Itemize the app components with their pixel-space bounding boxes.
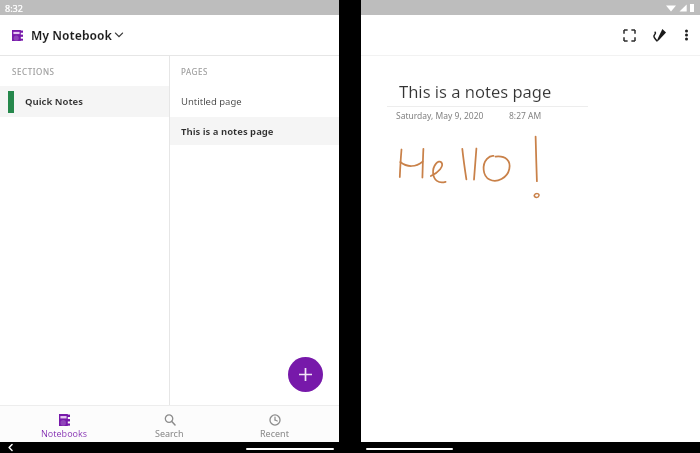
staticText: 8:27 AM xyxy=(509,110,542,122)
staticText: Saturday, May 9, 2020 xyxy=(396,110,484,122)
button[interactable]: New page xyxy=(288,357,323,392)
button[interactable]: My Notebook xyxy=(0,15,339,55)
button[interactable]: Untitled page xyxy=(170,86,339,117)
staticText: 8:32 xyxy=(5,2,23,14)
staticText: SECTIONS xyxy=(12,66,55,77)
button[interactable]: This is a notes page xyxy=(170,117,339,145)
staticText: Recent xyxy=(260,427,289,439)
staticText: Notebooks xyxy=(41,427,88,439)
staticText: My Notebook xyxy=(31,27,112,43)
button[interactable]: Recent xyxy=(222,414,327,442)
staticText: Quick Notes xyxy=(25,95,84,108)
button[interactable]: Notebooks xyxy=(12,414,117,442)
button[interactable]: Back xyxy=(6,443,15,452)
staticText: This is a notes page xyxy=(181,125,274,138)
button[interactable]: Quick Notes xyxy=(0,86,169,117)
button[interactable]: More options xyxy=(674,23,698,47)
staticText: Untitled page xyxy=(181,95,242,108)
button[interactable]: Home xyxy=(246,448,334,450)
staticText: Search xyxy=(155,427,184,439)
button[interactable]: Edit xyxy=(647,23,671,47)
button[interactable]: Home xyxy=(366,448,453,450)
button[interactable]: Search xyxy=(117,414,222,442)
staticText: This is a notes page xyxy=(399,80,552,102)
staticText: PAGES xyxy=(181,66,209,77)
button[interactable]: Full screen xyxy=(617,23,641,47)
